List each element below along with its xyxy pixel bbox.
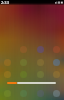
staticText: 2:33 <box>1 0 9 5</box>
button[interactable]: Brightness slider <box>7 81 56 85</box>
button[interactable]: App <box>53 59 60 66</box>
button[interactable]: App <box>37 59 44 66</box>
button[interactable]: App <box>20 90 27 97</box>
button[interactable]: App <box>37 71 44 78</box>
button[interactable]: App <box>20 59 27 66</box>
button[interactable]: App <box>53 46 60 53</box>
button[interactable]: App <box>37 46 44 53</box>
button[interactable]: App <box>20 71 27 78</box>
button[interactable]: App <box>20 46 27 53</box>
button[interactable]: App <box>53 71 60 78</box>
button[interactable]: App <box>37 90 44 97</box>
button[interactable]: App <box>4 59 11 66</box>
button[interactable]: App <box>53 90 60 97</box>
button[interactable]: App <box>4 90 11 97</box>
button[interactable]: App <box>4 71 11 78</box>
